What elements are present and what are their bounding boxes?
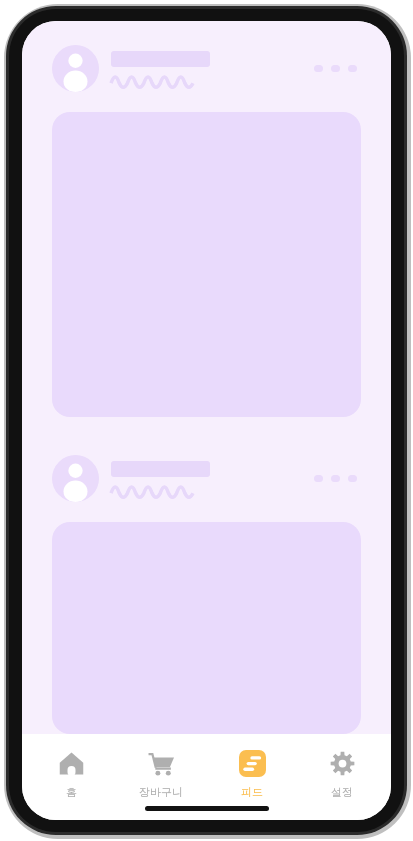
staticText: 장바구니 — [139, 785, 183, 799]
button[interactable]: More options — [308, 469, 363, 488]
staticText: 설정 — [331, 785, 353, 799]
button[interactable]: Settings — [300, 744, 384, 803]
other: Feed — [239, 750, 266, 777]
other: Home — [59, 751, 84, 776]
button[interactable]: Home — [29, 744, 113, 803]
button[interactable]: Cart — [119, 744, 203, 803]
staticText: 피드 — [241, 785, 263, 799]
other: Cart — [148, 750, 174, 776]
button[interactable]: More options — [308, 59, 363, 78]
button[interactable]: More options — [52, 455, 363, 502]
staticText: 홈 — [66, 785, 77, 799]
button[interactable]: Feed — [210, 744, 294, 803]
button[interactable]: More options — [52, 45, 363, 92]
other: Settings — [330, 751, 355, 776]
